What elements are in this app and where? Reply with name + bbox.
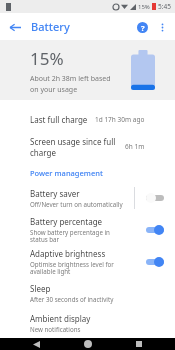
staticText: After 30 seconds of inactivity	[30, 295, 114, 303]
staticText: Adaptive brightness	[30, 248, 106, 259]
button[interactable]: Ambient display	[0, 308, 175, 338]
staticText: About 2h 38m left based on your usage	[30, 74, 115, 94]
staticText: ?	[141, 23, 145, 33]
staticText: Screen usage since full charge	[30, 136, 125, 158]
button[interactable]: Recent apps	[124, 338, 154, 350]
button[interactable]: Help	[132, 17, 152, 37]
button[interactable]: More options	[152, 17, 172, 37]
button[interactable]: Battery saver	[0, 182, 175, 214]
button[interactable]: Battery percentage	[0, 214, 175, 246]
staticText: 1d 17h 30m ago	[95, 115, 145, 124]
button[interactable]: Adaptive brightness	[0, 246, 175, 278]
staticText: Show battery percentage in status bar	[30, 228, 128, 244]
button[interactable]: Back	[5, 17, 25, 37]
staticText: Off/Never turn on automatically	[30, 200, 123, 208]
staticText: Battery percentage	[30, 216, 103, 227]
button[interactable]: Sleep	[0, 278, 175, 308]
staticText: 6h 1m	[125, 142, 145, 151]
button[interactable]: Screen usage since full charge	[0, 133, 175, 160]
staticText: Battery saver	[30, 188, 80, 199]
button[interactable]: Battery percentage	[135, 214, 175, 246]
staticText: Ambient display	[30, 313, 91, 324]
staticText: 5:45	[158, 2, 171, 11]
button[interactable]: Home	[73, 338, 103, 350]
button[interactable]: Battery saver	[135, 182, 175, 214]
staticText: New notifications	[30, 325, 81, 333]
staticText: Power management	[30, 168, 103, 178]
button[interactable]: Adaptive brightness	[135, 246, 175, 278]
staticText: 15%	[138, 3, 150, 11]
staticText: Sleep	[30, 283, 51, 294]
staticText: Optimise brightness level for available …	[30, 260, 128, 276]
staticText: Battery	[31, 19, 70, 34]
staticText: Last full charge	[30, 114, 95, 125]
button[interactable]: Last full charge	[0, 106, 175, 133]
staticText: 15%	[30, 47, 64, 70]
button[interactable]: Back	[21, 338, 51, 350]
